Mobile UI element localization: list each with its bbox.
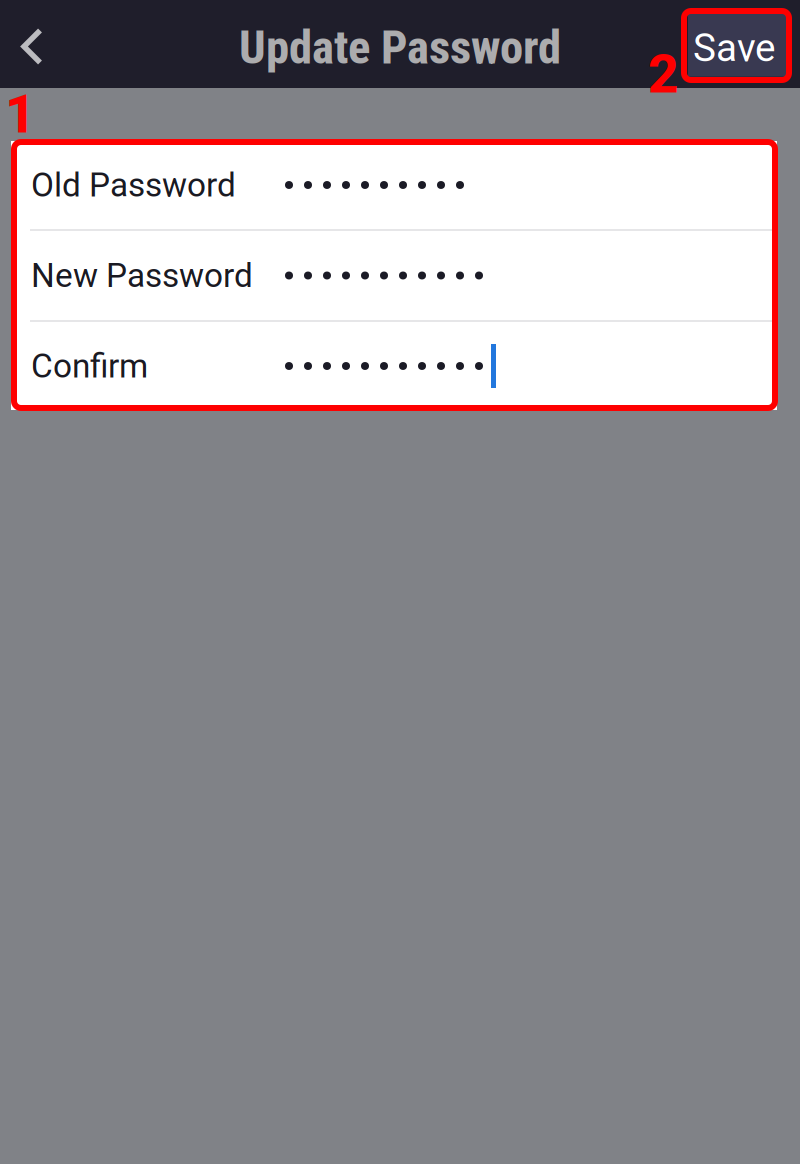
- button[interactable]: Save: [688, 11, 786, 77]
- staticText: New Password: [31, 256, 253, 295]
- staticText: Update Password: [239, 20, 561, 75]
- staticText: Save: [693, 25, 776, 71]
- button[interactable]: Confirm: [11, 322, 777, 410]
- staticText: Confirm: [31, 346, 148, 386]
- button[interactable]: New Password: [11, 231, 777, 320]
- staticText: 1: [5, 83, 36, 145]
- button[interactable]: Back: [0, 0, 62, 88]
- staticText: Old Password: [31, 165, 236, 205]
- button[interactable]: Old Password: [11, 141, 777, 229]
- staticText: 2: [648, 43, 679, 105]
